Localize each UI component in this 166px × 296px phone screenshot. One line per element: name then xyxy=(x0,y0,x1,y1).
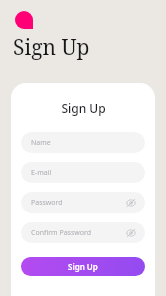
staticText: Confirm Password xyxy=(31,228,92,238)
button[interactable]: Confirm Password xyxy=(21,222,145,243)
staticText: Sign Up xyxy=(13,33,90,62)
button[interactable]: E-mail xyxy=(21,162,145,183)
other: App logo xyxy=(15,11,33,29)
button[interactable]: Sign Up xyxy=(21,257,145,276)
button[interactable]: Password xyxy=(21,192,145,213)
staticText: E-mail xyxy=(31,168,52,178)
staticText: Name xyxy=(31,138,51,148)
button[interactable]: Name xyxy=(21,132,145,153)
button[interactable]: Show password xyxy=(125,197,136,208)
staticText: Password xyxy=(31,198,63,208)
staticText: Sign Up xyxy=(61,100,106,116)
button[interactable]: Show password xyxy=(125,227,136,238)
staticText: Sign Up xyxy=(68,261,98,272)
